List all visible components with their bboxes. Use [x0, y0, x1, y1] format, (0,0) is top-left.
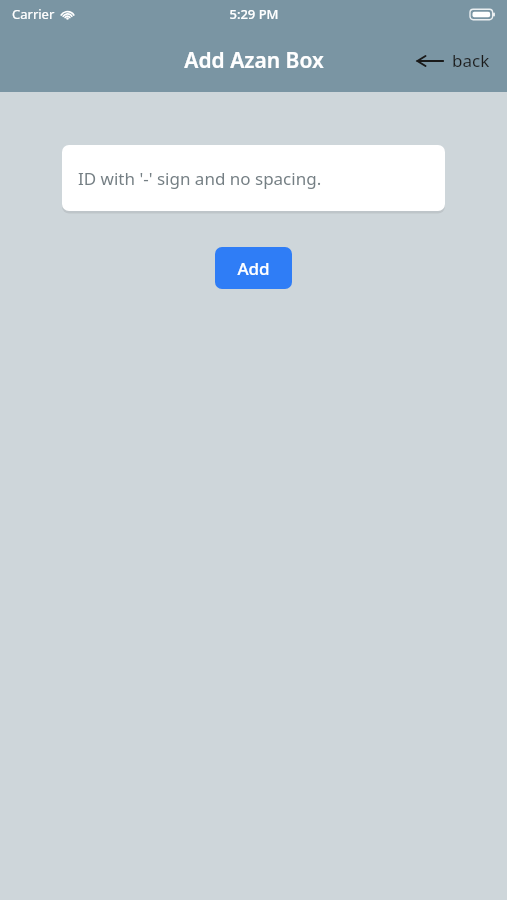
staticText: ID with '-' sign and no spacing.	[78, 167, 322, 190]
button[interactable]: back	[408, 43, 507, 78]
staticText: Add Azan Box	[184, 46, 324, 75]
staticText: 5:29 PM	[229, 5, 279, 23]
button[interactable]: ID with '-' sign and no spacing.	[62, 145, 445, 211]
button[interactable]: Add	[215, 247, 292, 289]
staticText: Add	[237, 257, 270, 280]
staticText: back	[452, 49, 490, 72]
staticText: Carrier	[12, 5, 55, 23]
